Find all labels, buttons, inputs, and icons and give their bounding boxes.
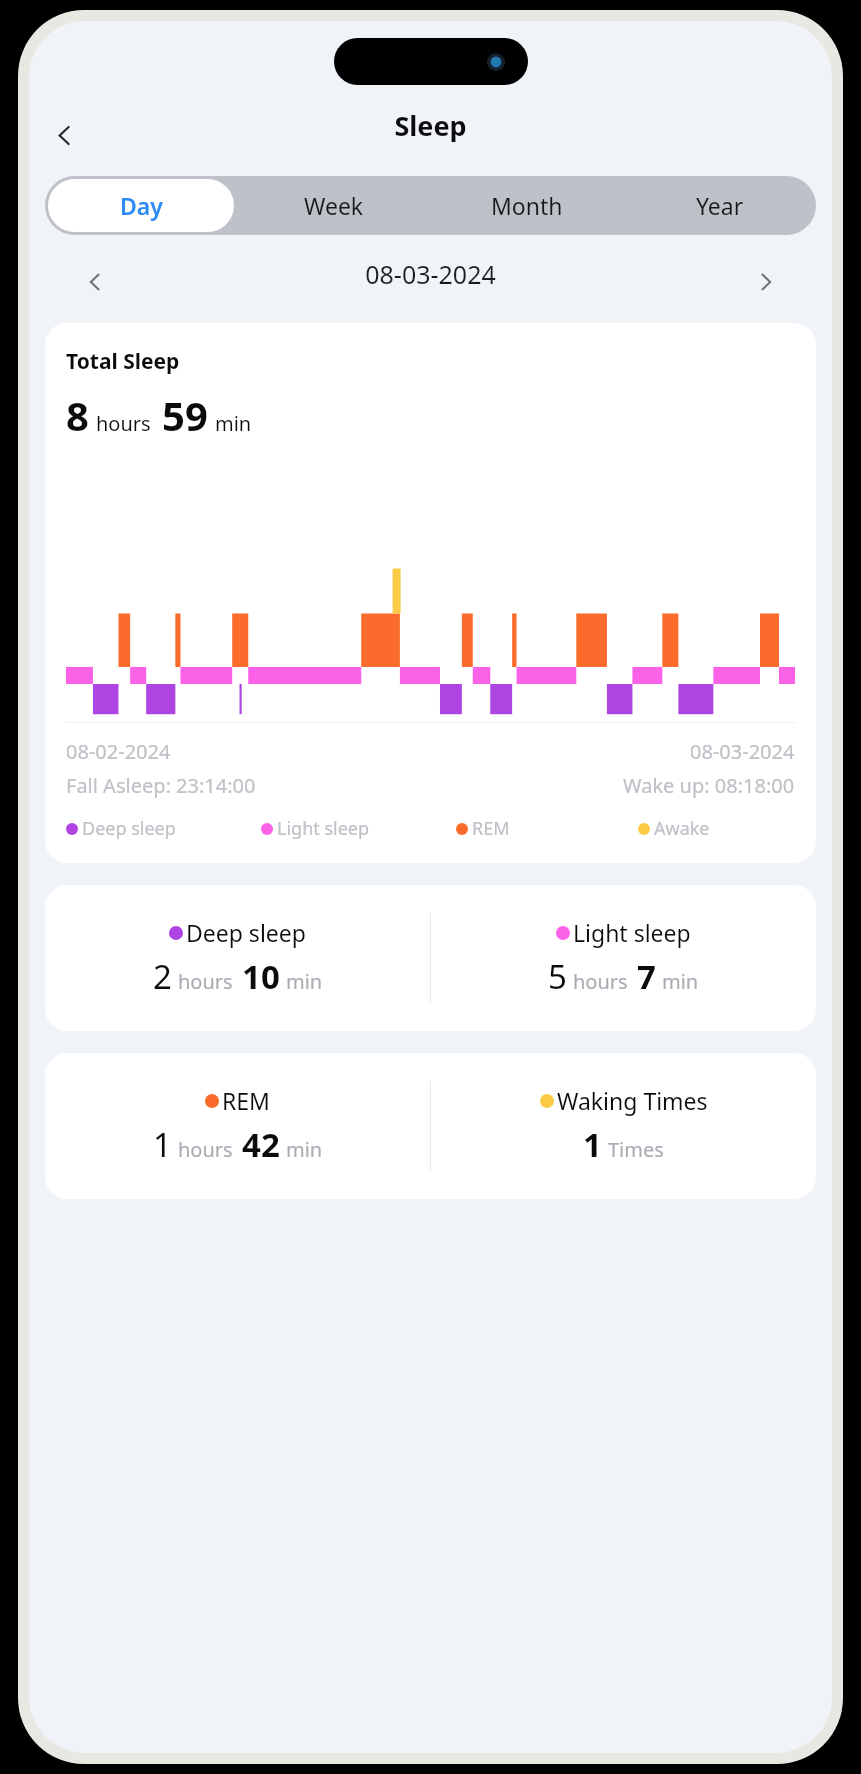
staticText: Deep sleep: [82, 816, 176, 841]
staticText: min: [215, 410, 252, 437]
staticText: Total Sleep: [66, 347, 180, 376]
staticText: Week: [304, 190, 364, 221]
staticText: 10: [242, 954, 280, 999]
staticText: Sleep: [394, 107, 467, 144]
staticText: Awake: [654, 816, 710, 841]
staticText: 59: [162, 388, 208, 442]
staticText: Fall Asleep: 23:14:00: [66, 772, 256, 799]
button[interactable]: REM: [45, 1053, 430, 1199]
staticText: Wake up: 08:18:00: [623, 772, 795, 799]
staticText: min: [286, 1136, 323, 1163]
staticText: hours: [573, 968, 628, 995]
staticText: hours: [178, 968, 233, 995]
staticText: 08-03-2024: [690, 738, 795, 765]
button[interactable]: Next day: [744, 260, 788, 304]
button[interactable]: Waking Times: [431, 1053, 816, 1199]
button[interactable]: Month: [433, 179, 620, 232]
staticText: REM: [222, 1085, 270, 1116]
staticText: 1: [153, 1122, 172, 1167]
staticText: Day: [120, 190, 163, 221]
staticText: min: [662, 968, 699, 995]
staticText: Light sleep: [573, 917, 691, 948]
staticText: Waking Times: [557, 1085, 708, 1116]
staticText: REM: [472, 816, 510, 841]
staticText: min: [286, 968, 323, 995]
staticText: 8: [66, 388, 89, 442]
button[interactable]: Total Sleep: [45, 323, 816, 863]
staticText: 2: [153, 954, 172, 999]
staticText: 08-03-2024: [365, 257, 496, 291]
staticText: 5: [548, 954, 567, 999]
button[interactable]: Year: [626, 179, 813, 232]
staticText: Year: [696, 190, 744, 221]
button[interactable]: Previous day: [73, 260, 117, 304]
button[interactable]: Week: [240, 179, 427, 232]
staticText: Deep sleep: [186, 917, 306, 948]
staticText: hours: [96, 410, 151, 437]
staticText: Month: [491, 190, 563, 221]
button[interactable]: Back: [41, 112, 87, 158]
button[interactable]: Deep sleep: [45, 885, 430, 1031]
staticText: 7: [637, 954, 656, 999]
staticText: Times: [608, 1136, 664, 1163]
staticText: hours: [178, 1136, 233, 1163]
staticText: 42: [242, 1122, 280, 1167]
button[interactable]: Day: [48, 179, 234, 232]
button[interactable]: Light sleep: [431, 885, 816, 1031]
staticText: 1: [583, 1122, 602, 1167]
staticText: Light sleep: [277, 816, 370, 841]
staticText: 08-02-2024: [66, 738, 171, 765]
